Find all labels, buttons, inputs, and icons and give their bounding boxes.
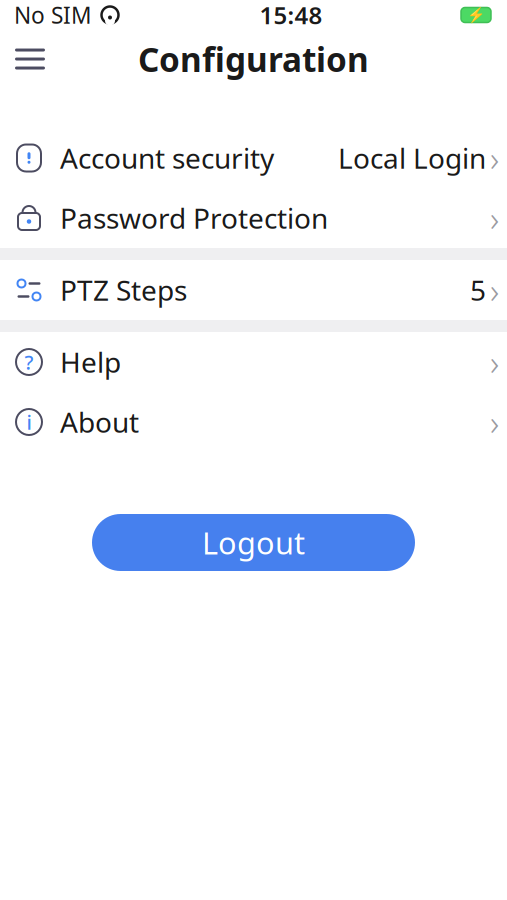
staticText: About [60, 403, 139, 441]
staticText: › [490, 267, 499, 313]
staticText: › [490, 339, 499, 385]
button[interactable]: i [0, 392, 507, 452]
staticText: Help [60, 343, 121, 381]
staticText: › [490, 399, 499, 445]
staticText: PTZ Steps [60, 271, 187, 309]
staticText: Configuration [138, 37, 369, 81]
button[interactable]: ? [0, 332, 507, 392]
staticText: i [26, 409, 31, 435]
staticText: No SIM [14, 0, 92, 30]
staticText: › [490, 195, 499, 241]
staticText: ? [24, 349, 33, 375]
staticText: Password Protection [60, 199, 328, 237]
staticText: Local Login [338, 139, 486, 177]
button[interactable]: Logout [92, 514, 415, 571]
staticText: 15:48 [259, 0, 322, 31]
staticText: Logout [202, 522, 305, 563]
staticText: 5 [470, 271, 486, 309]
button[interactable]: Account security [0, 128, 507, 188]
button[interactable]: PTZ Steps [0, 260, 507, 320]
staticText: › [490, 135, 499, 181]
button[interactable]: Password Protection [0, 188, 507, 248]
staticText: ⚡ [467, 7, 485, 23]
button[interactable]: Menu [6, 37, 54, 81]
staticText: Account security [60, 139, 274, 177]
